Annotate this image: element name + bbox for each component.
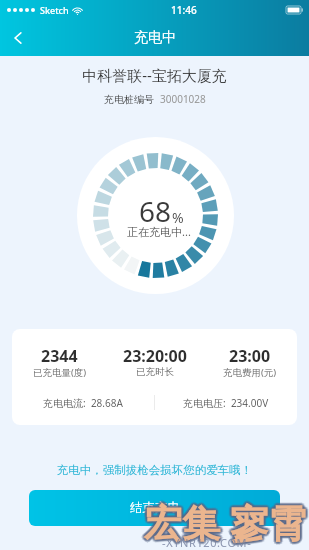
staticText: 23:00 — [229, 345, 271, 367]
staticText: 宏集 寥霄 — [145, 494, 307, 546]
staticText: 宏集 寥霄 — [144, 497, 306, 549]
staticText: 宏集 寥霄 — [144, 494, 306, 546]
staticText: 充电电流: 28.68A — [43, 396, 123, 410]
staticText: 宏集 寥霄 — [146, 495, 308, 547]
staticText: 宏集 寥霄 — [146, 498, 308, 550]
staticText: 宏集 寥霄 — [142, 494, 304, 546]
staticText: 宏集 寥霄 — [145, 495, 307, 547]
staticText: 宏集 寥霄 — [146, 497, 308, 549]
staticText: 宏集 寥霄 — [145, 497, 307, 549]
staticText: 2344 — [41, 345, 78, 367]
staticText: Sketch — [40, 4, 69, 16]
staticText: 宏集 寥霄 — [144, 496, 306, 548]
staticText: 宏集 寥霄 — [143, 498, 305, 550]
staticText: 宏集 寥霄 — [144, 493, 306, 545]
staticText: 已充电量(度) — [33, 366, 87, 379]
staticText: 宏集 寥霄 — [143, 497, 305, 549]
staticText: 宏集 寥霄 — [144, 495, 306, 547]
staticText: 中科誉联--宝拓大厦充 — [0, 65, 309, 85]
staticText: 宏集 寥霄 — [146, 496, 308, 548]
staticText: 充电桩编号 — [104, 93, 154, 106]
staticText: 宏集 寥霄 — [146, 494, 308, 546]
staticText: 结束充电 — [130, 500, 180, 516]
staticText: 68 — [139, 192, 172, 230]
button[interactable]: Back — [0, 20, 36, 56]
staticText: 宏集 寥霄 — [142, 498, 304, 550]
staticText: 宏集 寥霄 — [147, 496, 309, 548]
staticText: 宏集 寥霄 — [142, 496, 304, 548]
button[interactable]: 结束充电 — [29, 490, 280, 526]
staticText: 宏集 寥霄 — [143, 496, 305, 548]
staticText: 宏集 寥霄 — [141, 496, 303, 548]
staticText: -XYNR120.COM- — [162, 535, 252, 550]
staticText: 宏集 寥霄 — [144, 499, 306, 550]
staticText: 宏集 寥霄 — [145, 498, 307, 550]
staticText: 已充时长 — [136, 366, 174, 378]
staticText: 宏集 寥霄 — [144, 498, 306, 550]
staticText: 宏集 寥霄 — [145, 496, 307, 548]
staticText: 宏集 寥霄 — [143, 495, 305, 547]
staticText: 宏集 寥霄 — [143, 494, 305, 546]
staticText: % — [172, 208, 184, 227]
staticText: 宏集 寥霄 — [142, 495, 304, 547]
staticText: 充电中，强制拔枪会损坏您的爱车哦！ — [0, 463, 309, 477]
staticText: 正在充电中... — [127, 224, 191, 239]
staticText: 30001028 — [160, 92, 206, 106]
staticText: 充电电压: 234.00V — [183, 396, 269, 410]
staticText: 11:46 — [171, 3, 197, 17]
staticText: 宏集 寥霄 — [142, 497, 304, 549]
staticText: 充电中 — [134, 29, 176, 47]
staticText: 充电费用(元) — [223, 366, 277, 379]
staticText: 23:20:00 — [123, 345, 187, 367]
